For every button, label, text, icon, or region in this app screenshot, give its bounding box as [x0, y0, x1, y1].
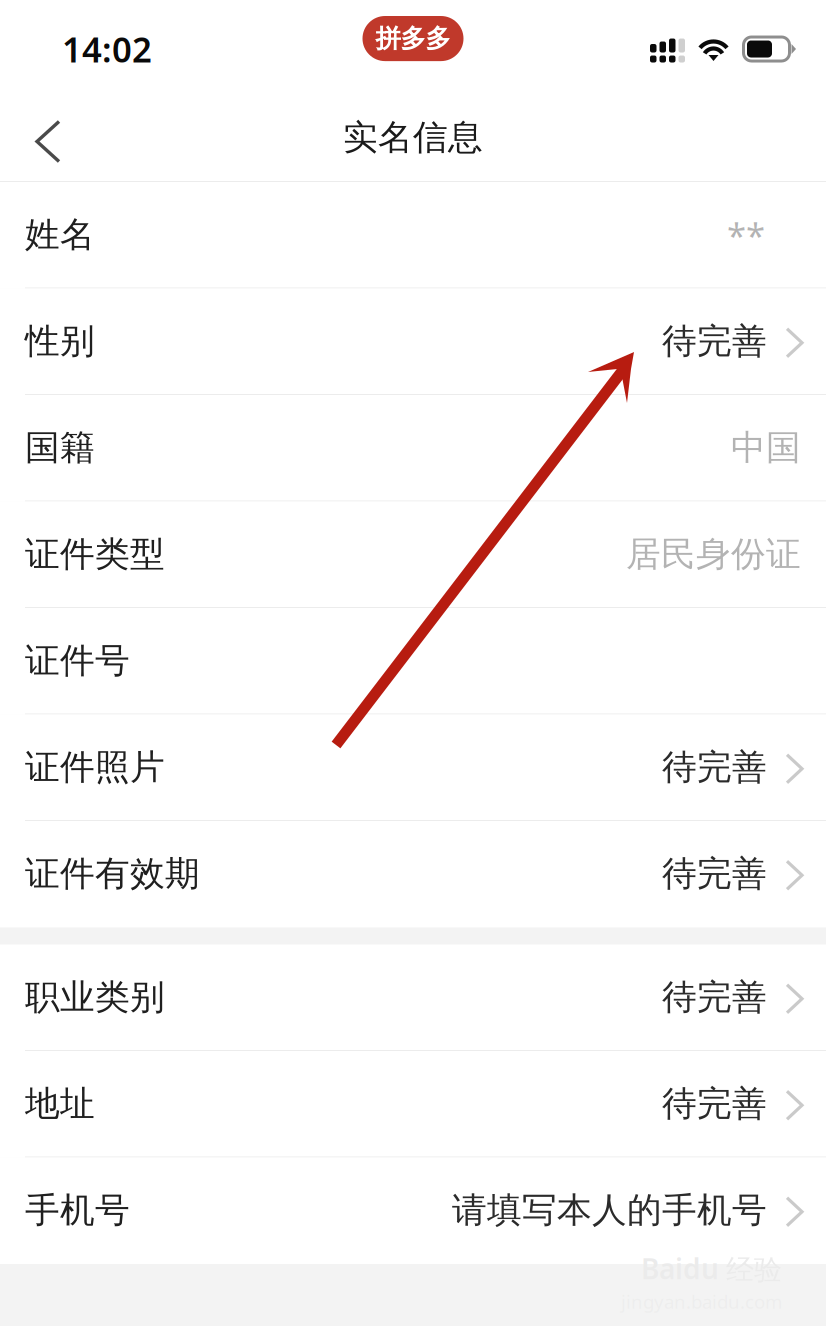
- staticText: 待完善: [662, 320, 767, 363]
- staticText: 证件号: [25, 639, 130, 682]
- staticText: 拼多多: [375, 23, 450, 54]
- staticText: Baidu 经验: [641, 1250, 782, 1287]
- button[interactable]: 职业类别: [0, 944, 826, 1051]
- button[interactable]: 国籍: [0, 395, 826, 501]
- staticText: 职业类别: [25, 976, 165, 1019]
- staticText: 待完善: [662, 746, 767, 789]
- staticText: 姓名: [25, 213, 95, 256]
- staticText: 国籍: [25, 426, 95, 469]
- button[interactable]: 证件有效期: [0, 821, 826, 927]
- button[interactable]: 证件号: [0, 608, 826, 714]
- staticText: 证件类型: [25, 533, 165, 576]
- staticText: 实名信息: [343, 116, 483, 159]
- button[interactable]: 地址: [0, 1051, 826, 1157]
- button[interactable]: 证件类型: [0, 501, 826, 608]
- staticText: 待完善: [662, 852, 767, 895]
- staticText: **: [727, 212, 765, 258]
- button[interactable]: Back: [0, 88, 89, 180]
- staticText: 性别: [25, 320, 95, 363]
- staticText: 中国: [731, 426, 801, 469]
- staticText: 待完善: [662, 1082, 767, 1125]
- button[interactable]: 手机号: [0, 1157, 826, 1264]
- staticText: 请填写本人的手机号: [452, 1189, 767, 1232]
- staticText: 证件照片: [25, 746, 165, 789]
- staticText: 证件有效期: [25, 852, 200, 895]
- staticText: 手机号: [25, 1189, 130, 1232]
- staticText: 地址: [25, 1082, 95, 1125]
- button[interactable]: 性别: [0, 288, 826, 395]
- staticText: 待完善: [662, 976, 767, 1019]
- button[interactable]: 姓名: [0, 182, 826, 288]
- staticText: 居民身份证: [626, 533, 801, 576]
- staticText: 14:02: [62, 26, 152, 72]
- button[interactable]: 证件照片: [0, 714, 826, 821]
